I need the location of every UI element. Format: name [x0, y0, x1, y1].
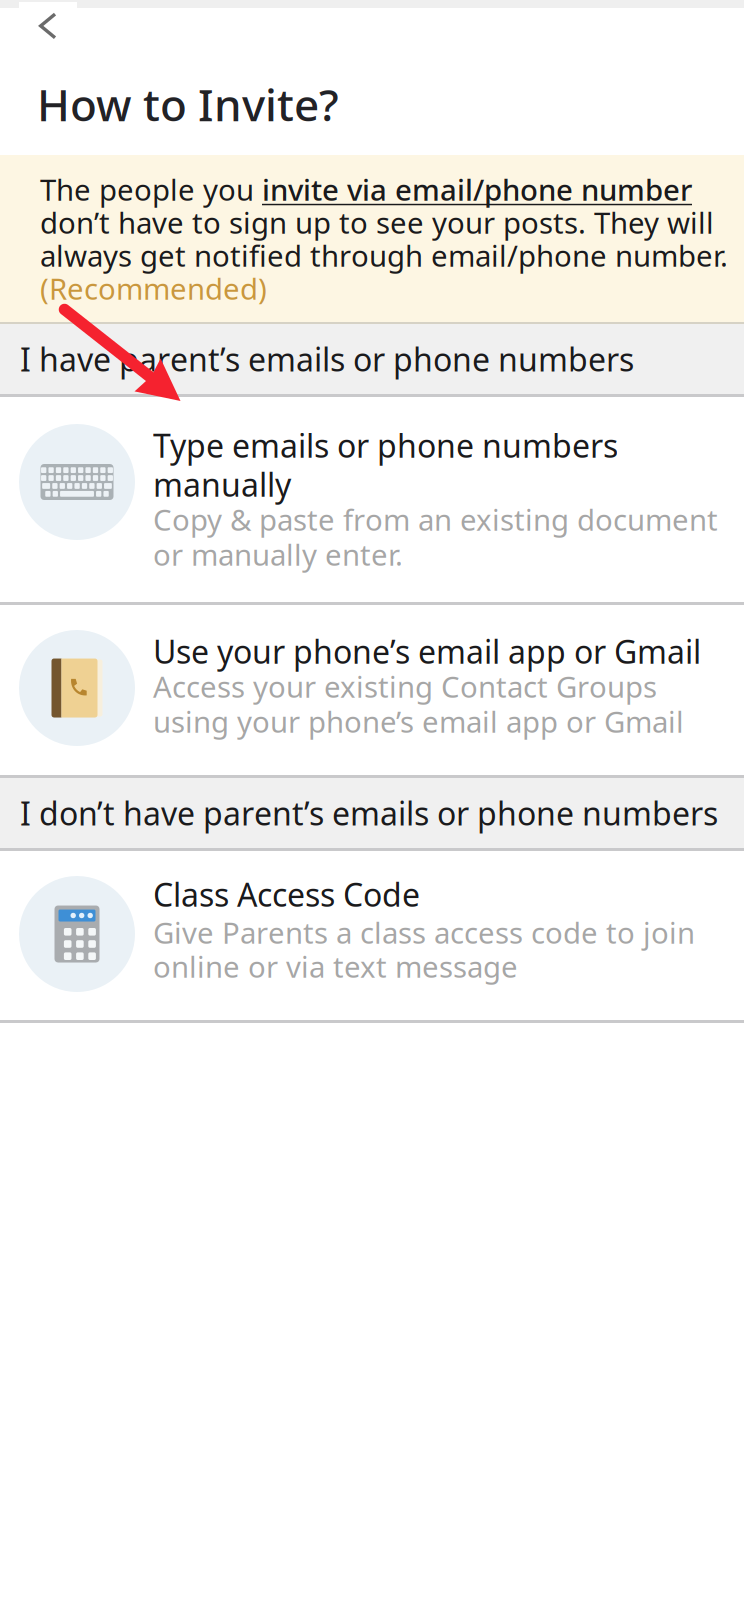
staticText: Access your existing Contact Groups [153, 667, 657, 706]
staticText: (Recommended) [40, 269, 267, 308]
staticText: I have parent’s emails or phone numbers [20, 338, 634, 380]
staticText: Use your phone’s email app or Gmail [153, 630, 701, 672]
staticText: online or via text message [153, 947, 518, 986]
button[interactable]: Use your phone’s email app or Gmail [0, 605, 744, 775]
staticText: Copy & paste from an existing document [153, 500, 718, 539]
staticText: manually [153, 463, 291, 505]
staticText: Type emails or phone numbers [153, 424, 618, 466]
staticText: Give Parents a class access code to join [153, 913, 695, 952]
staticText: The people you invite via email/phone nu… [40, 170, 692, 209]
staticText: I don’t have parent’s emails or phone nu… [20, 792, 718, 834]
button[interactable]: Class Access Code [0, 851, 744, 1020]
staticText: using your phone’s email app or Gmail [153, 702, 684, 741]
button[interactable]: Type emails or phone numbers manually [0, 397, 744, 602]
button[interactable]: Back [19, 2, 77, 50]
staticText: always get notified through email/phone … [40, 236, 728, 275]
staticText: or manually enter. [153, 535, 403, 574]
staticText: Class Access Code [153, 873, 420, 915]
staticText: don’t have to sign up to see your posts.… [40, 203, 714, 242]
staticText: How to Invite? [37, 75, 339, 133]
